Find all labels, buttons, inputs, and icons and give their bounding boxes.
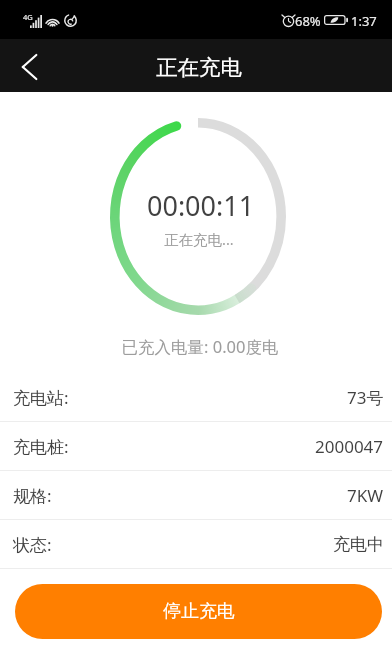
button[interactable]: 充电站: (0, 373, 392, 422)
staticText: 充电桩: (13, 435, 69, 458)
staticText: 1:37 (351, 12, 377, 30)
button[interactable]: 停止充电 (15, 584, 382, 639)
button[interactable]: 充电桩: (0, 422, 392, 471)
button[interactable]: 规格: (0, 471, 392, 520)
staticText: 68% (295, 12, 321, 30)
staticText: 4G (23, 12, 33, 22)
staticText: 7KW (347, 484, 384, 507)
staticText: 00:00:11 (147, 187, 255, 224)
staticText: 2000047 (315, 435, 384, 458)
staticText: 规格: (13, 484, 52, 507)
button[interactable]: 状态: (0, 520, 392, 569)
staticText: 充电中 (333, 534, 384, 555)
staticText: 73号 (347, 386, 384, 409)
staticText: 充电站: (13, 386, 69, 409)
staticText: 状态: (13, 533, 52, 556)
staticText: 已充入电量: 0.00度电 (4, 335, 392, 358)
button[interactable]: Back (0, 39, 53, 92)
staticText: 正在充电 (156, 54, 242, 81)
staticText: 正在充电... (164, 229, 234, 249)
staticText: 停止充电 (163, 600, 235, 623)
